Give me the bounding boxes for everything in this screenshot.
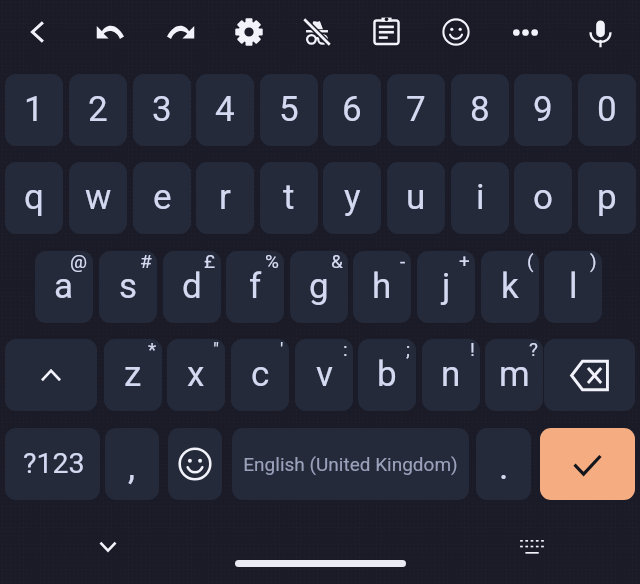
staticText: f (249, 266, 262, 307)
button[interactable]: " (167, 339, 225, 411)
staticText: English (United Kingdom) (243, 453, 458, 475)
button[interactable]: £ (163, 251, 221, 323)
staticText: v (316, 354, 333, 395)
button[interactable]: + (417, 251, 475, 323)
button[interactable]: Hide keyboard (86, 524, 130, 568)
staticText: s (119, 266, 138, 307)
button[interactable]: 9 (514, 74, 572, 146)
button[interactable]: @ (35, 251, 93, 323)
button[interactable]: - (353, 251, 411, 323)
staticText: 3 (152, 89, 172, 130)
button[interactable]: ! (422, 339, 480, 411)
button[interactable]: Voice input (573, 6, 627, 60)
button[interactable]: u (387, 162, 445, 234)
staticText: p (597, 177, 617, 218)
staticText: d (182, 266, 202, 307)
button[interactable]: 2 (69, 74, 127, 146)
staticText: - (400, 251, 406, 272)
staticText: ( (527, 251, 534, 272)
button[interactable]: Change keyboard (510, 524, 554, 568)
button[interactable]: 7 (387, 74, 445, 146)
button[interactable]: More options (498, 5, 552, 59)
staticText: £ (204, 251, 216, 272)
staticText: 4 (215, 89, 235, 130)
button[interactable]: ? (485, 339, 543, 411)
staticText: ? (529, 339, 538, 360)
staticText: @ (70, 251, 88, 272)
button[interactable]: q (5, 162, 63, 234)
button[interactable]: Redo (154, 5, 208, 59)
staticText: % (265, 251, 279, 272)
button[interactable]: Backspace (544, 339, 635, 411)
staticText: j (442, 266, 451, 307)
button[interactable]: Back (10, 5, 64, 59)
button[interactable]: t (260, 162, 318, 234)
staticText: w (85, 177, 112, 218)
staticText: l (569, 266, 578, 307)
button[interactable]: : (295, 339, 353, 411)
staticText: t (283, 177, 295, 218)
staticText: : (343, 339, 348, 360)
button[interactable]: Settings (222, 5, 276, 59)
staticText: 7 (406, 89, 426, 130)
button[interactable]: Emoji (429, 5, 483, 59)
staticText: 2 (88, 89, 108, 130)
button[interactable]: # (99, 251, 157, 323)
staticText: ; (406, 339, 411, 360)
staticText: ' (280, 339, 284, 360)
button[interactable]: * (104, 339, 162, 411)
button[interactable]: 3 (133, 74, 191, 146)
button[interactable]: & (290, 251, 348, 323)
staticText: 8 (470, 89, 490, 130)
button[interactable]: 6 (323, 74, 381, 146)
button[interactable]: 0 (578, 74, 636, 146)
button[interactable]: i (451, 162, 509, 234)
button[interactable]: ' (231, 339, 289, 411)
button[interactable]: Clipboard (359, 3, 413, 57)
staticText: & (331, 251, 343, 272)
staticText: ) (590, 251, 597, 272)
staticText: 1 (24, 89, 44, 130)
staticText: z (124, 354, 142, 395)
button[interactable]: ( (481, 251, 539, 323)
staticText: * (148, 339, 157, 360)
button[interactable]: Incognito off (290, 5, 344, 59)
staticText: r (219, 177, 231, 218)
button[interactable]: % (226, 251, 284, 323)
staticText: i (476, 177, 485, 218)
button[interactable]: Enter (540, 428, 635, 500)
staticText: y (344, 177, 361, 218)
staticText: g (309, 266, 329, 307)
staticText: x (187, 354, 205, 395)
staticText: a (54, 266, 74, 307)
button[interactable]: e (133, 162, 191, 234)
button[interactable]: 8 (451, 74, 509, 146)
button[interactable]: , (105, 428, 159, 500)
button[interactable]: o (514, 162, 572, 234)
staticText: n (441, 354, 461, 395)
staticText: b (377, 354, 397, 395)
staticText: c (251, 354, 270, 395)
button[interactable]: Shift (5, 339, 97, 411)
button[interactable]: ; (358, 339, 416, 411)
staticText: k (501, 266, 519, 307)
button[interactable]: English (United Kingdom) (232, 428, 469, 500)
button[interactable]: r (196, 162, 254, 234)
button[interactable]: ) (544, 251, 602, 323)
button[interactable]: 5 (260, 74, 318, 146)
button[interactable]: . (476, 428, 531, 500)
staticText: q (24, 177, 44, 218)
button[interactable]: Emoji keyboard (168, 428, 222, 500)
staticText: m (499, 354, 530, 395)
button[interactable]: 4 (196, 74, 254, 146)
button[interactable]: Undo (82, 5, 136, 59)
staticText: 9 (533, 89, 553, 130)
staticText: ?123 (23, 447, 85, 480)
button[interactable]: 1 (5, 74, 63, 146)
button[interactable]: w (69, 162, 127, 234)
button[interactable]: ?123 (5, 428, 100, 500)
button[interactable]: y (323, 162, 381, 234)
button[interactable]: p (578, 162, 636, 234)
staticText: e (153, 177, 172, 218)
staticText: " (213, 339, 220, 360)
